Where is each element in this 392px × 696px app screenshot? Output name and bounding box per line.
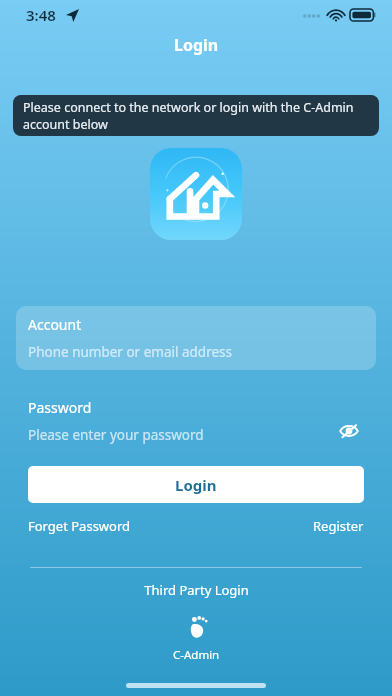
button[interactable]: Forget Password: [28, 511, 131, 541]
button[interactable]: Account: [16, 306, 376, 370]
staticText: Password: [28, 398, 92, 417]
button[interactable]: C-Admin: [161, 613, 232, 665]
staticText: Login: [175, 475, 217, 495]
staticText: Account: [28, 315, 82, 334]
button[interactable]: Show password: [334, 416, 364, 446]
staticText: 3:48: [26, 5, 56, 25]
staticText: C-Admin: [173, 647, 220, 663]
staticText: Please connect to the network or login w…: [23, 99, 369, 132]
button[interactable]: Password: [28, 394, 364, 448]
staticText: Register: [313, 517, 364, 535]
staticText: Forget Password: [28, 517, 131, 535]
staticText: Third Party Login: [144, 581, 249, 599]
button[interactable]: Register: [313, 511, 364, 541]
staticText: Phone number or email address: [28, 343, 233, 361]
button[interactable]: Login: [28, 466, 364, 503]
staticText: Please enter your password: [28, 426, 204, 444]
button[interactable]: Please connect to the network or login w…: [13, 95, 379, 136]
staticText: Login: [174, 34, 219, 56]
